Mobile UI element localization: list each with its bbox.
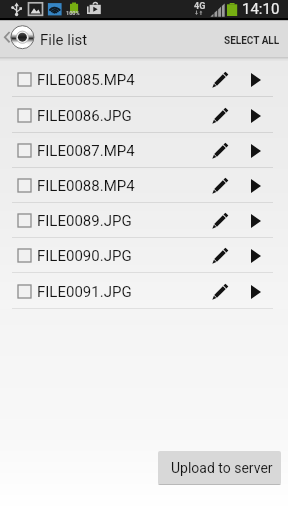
button[interactable]: Play FILE0085.MP4: [243, 61, 268, 96]
button[interactable]: Edit FILE0087.MP4: [204, 132, 235, 167]
staticText: FILE0086.JPG: [37, 107, 132, 125]
staticText: FILE0089.JPG: [37, 212, 132, 230]
staticText: FILE0087.MP4: [37, 142, 135, 160]
staticText: FILE0085.MP4: [37, 71, 135, 89]
button[interactable]: Play FILE0087.MP4: [243, 132, 268, 167]
button[interactable]: Play FILE0089.JPG: [243, 202, 268, 237]
button[interactable]: Select FILE0087.MP4: [0, 132, 288, 167]
button[interactable]: Select FILE0091.JPG: [18, 285, 31, 298]
button[interactable]: Edit FILE0085.MP4: [204, 61, 235, 96]
button[interactable]: Select FILE0086.JPG: [0, 97, 288, 132]
button[interactable]: Select FILE0088.MP4: [0, 167, 288, 202]
staticText: 14:10: [242, 0, 280, 18]
button[interactable]: Select FILE0086.JPG: [18, 109, 31, 122]
staticText: FILE0091.JPG: [37, 283, 132, 301]
staticText: FILE0090.JPG: [37, 247, 132, 265]
button[interactable]: Edit FILE0088.MP4: [204, 167, 235, 202]
button[interactable]: Select FILE0085.MP4: [18, 73, 31, 86]
button[interactable]: Play FILE0091.JPG: [243, 273, 268, 308]
staticText: SELECT ALL: [224, 35, 280, 47]
button[interactable]: Select FILE0089.JPG: [18, 214, 31, 227]
button[interactable]: Select FILE0087.MP4: [18, 144, 31, 157]
button[interactable]: Edit FILE0086.JPG: [204, 97, 235, 132]
button[interactable]: Select FILE0088.MP4: [18, 179, 31, 192]
button[interactable]: Select FILE0090.JPG: [18, 249, 31, 262]
button[interactable]: Select FILE0085.MP4: [0, 61, 288, 96]
button[interactable]: Select FILE0090.JPG: [0, 237, 288, 272]
staticText: 4G: [194, 1, 206, 12]
button[interactable]: Edit FILE0089.JPG: [204, 202, 235, 237]
staticText: File list: [40, 31, 88, 49]
button[interactable]: Edit FILE0091.JPG: [204, 273, 235, 308]
button[interactable]: Edit FILE0090.JPG: [204, 237, 235, 272]
staticText: 100%: [66, 10, 80, 16]
button[interactable]: Play FILE0090.JPG: [243, 237, 268, 272]
staticText: FILE0088.MP4: [37, 177, 135, 195]
staticText: Upload to server: [171, 460, 273, 476]
button[interactable]: Upload to server: [158, 451, 281, 485]
button[interactable]: Select FILE0089.JPG: [0, 202, 288, 237]
button[interactable]: Play FILE0086.JPG: [243, 97, 268, 132]
button[interactable]: SELECT ALL: [224, 21, 280, 57]
button[interactable]: Select FILE0091.JPG: [0, 273, 288, 308]
button[interactable]: Play FILE0088.MP4: [243, 167, 268, 202]
